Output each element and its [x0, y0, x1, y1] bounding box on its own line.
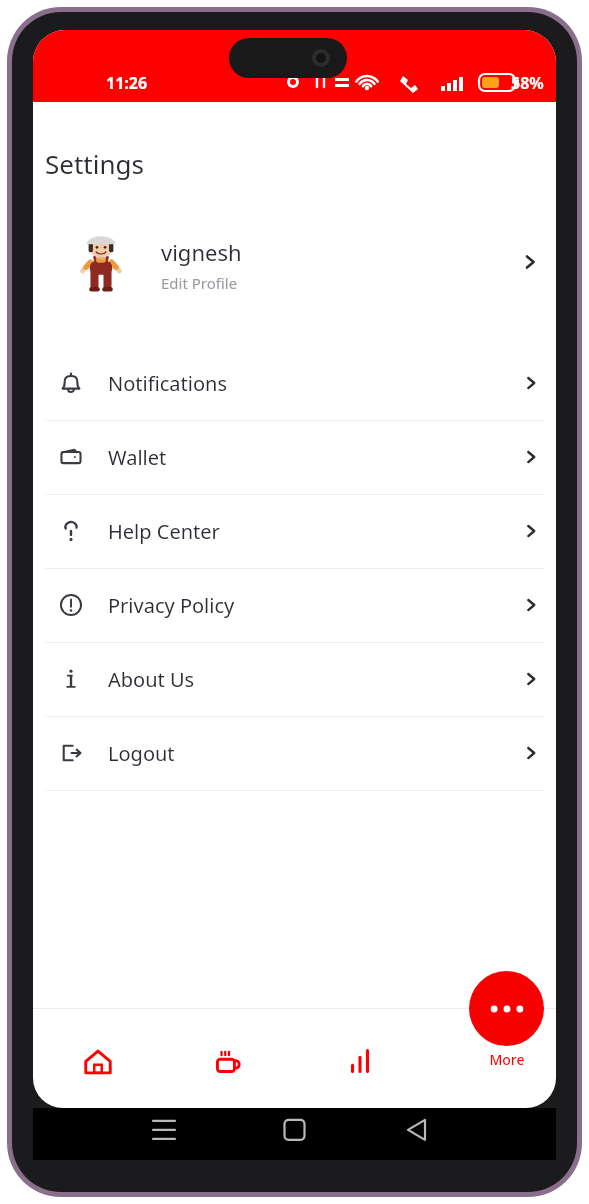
button[interactable]: vignesh [33, 202, 556, 320]
staticText: 11:26 [106, 72, 148, 94]
button[interactable]: Help Center [33, 494, 556, 568]
button[interactable]: Wallet [33, 420, 556, 494]
button[interactable]: Orders [163, 1009, 294, 1108]
staticText: Logout [108, 740, 175, 767]
button[interactable]: About Us [33, 642, 556, 716]
button[interactable]: Notifications [33, 346, 556, 420]
button[interactable]: Reports [294, 1009, 425, 1108]
button[interactable]: More [456, 971, 556, 1081]
button[interactable]: Privacy Policy [33, 568, 556, 642]
staticText: 58% [511, 72, 544, 94]
staticText: Help Center [108, 518, 220, 545]
staticText: vignesh [161, 237, 242, 267]
staticText: Wallet [108, 444, 167, 471]
button[interactable]: Logout [33, 716, 556, 790]
staticText: About Us [108, 666, 195, 693]
staticText: More [489, 1050, 525, 1069]
button[interactable]: Home [33, 1009, 163, 1108]
staticText: Settings [45, 146, 144, 181]
staticText: Edit Profile [161, 273, 238, 293]
staticText: Privacy Policy [108, 592, 235, 619]
staticText: Notifications [108, 370, 227, 397]
